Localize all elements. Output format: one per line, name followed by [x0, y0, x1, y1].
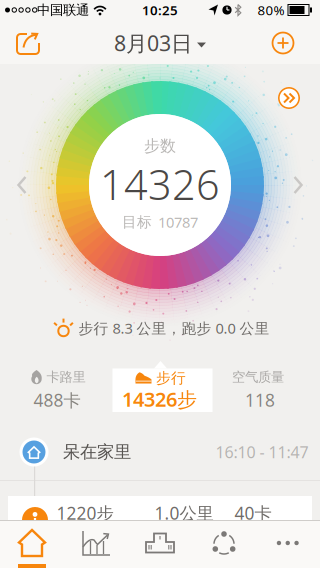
staticText: 卡路里	[46, 369, 85, 385]
staticText: 8月03日	[114, 29, 192, 57]
button[interactable]: 呆在家里 16:10 - 11:47	[0, 425, 320, 479]
staticText: 1.0公里	[154, 501, 213, 524]
button[interactable]: 更多	[256, 519, 320, 567]
staticText: 14326步	[122, 386, 197, 412]
staticText: 40卡	[234, 501, 271, 524]
button[interactable]: 步行 14326步	[110, 361, 214, 412]
staticText: 10:25	[142, 1, 178, 19]
button[interactable]: Previous day	[10, 170, 34, 200]
button[interactable]: 分享	[192, 519, 256, 567]
staticText: 中国联通	[37, 2, 89, 18]
staticText: 步行	[156, 369, 186, 387]
staticText: 呆在家里	[63, 441, 131, 463]
staticText: 步行 8.3 公里，跑步 0.0 公里	[78, 318, 269, 338]
button[interactable]: 首页	[0, 519, 64, 567]
button[interactable]: 选择日期	[114, 29, 206, 57]
button[interactable]: 统计	[64, 519, 128, 567]
button[interactable]: 排行	[128, 519, 192, 567]
staticText: 10787	[158, 212, 198, 232]
staticText: 488卡	[33, 388, 80, 411]
button[interactable]: Share	[6, 22, 50, 66]
staticText: 16:10 - 11:47	[215, 441, 308, 463]
staticText: 80%	[257, 1, 284, 19]
button[interactable]: Add	[261, 21, 305, 65]
staticText: 14326	[100, 157, 220, 211]
button[interactable]: Next day	[286, 170, 310, 200]
staticText: 空气质量	[232, 369, 284, 385]
button[interactable]: Details	[275, 84, 303, 112]
staticText: 1220步	[56, 501, 113, 524]
staticText: 步数	[144, 136, 176, 156]
staticText: 目标	[122, 213, 152, 231]
staticText: 118	[245, 388, 275, 411]
button[interactable]: 步行活动详情	[8, 496, 312, 568]
